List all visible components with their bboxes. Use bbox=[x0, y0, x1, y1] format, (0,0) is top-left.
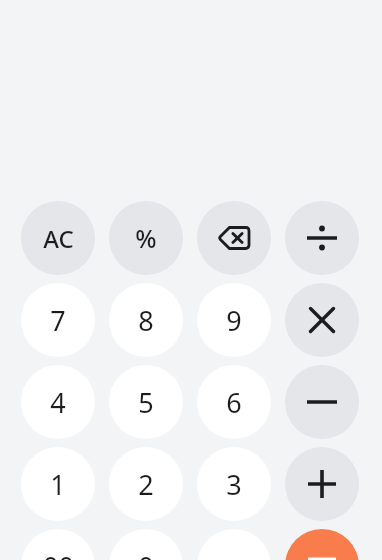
staticText: 4 bbox=[50, 384, 66, 421]
staticText: 1 bbox=[50, 466, 66, 503]
button[interactable]: 8 bbox=[109, 283, 183, 357]
button[interactable]: 00 bbox=[21, 529, 95, 560]
staticText: 9 bbox=[226, 302, 242, 339]
button[interactable]: Subtract bbox=[285, 365, 359, 439]
button[interactable]: AC bbox=[21, 201, 95, 275]
button[interactable]: Divide bbox=[285, 201, 359, 275]
staticText: 8 bbox=[138, 302, 154, 339]
button[interactable]: Multiply bbox=[285, 283, 359, 357]
staticText: 6 bbox=[226, 384, 242, 421]
button[interactable]: 1 bbox=[21, 447, 95, 521]
staticText: 0 bbox=[138, 548, 154, 560]
staticText: 3 bbox=[226, 466, 242, 503]
button[interactable]: 3 bbox=[197, 447, 271, 521]
button[interactable]: 7 bbox=[21, 283, 95, 357]
button[interactable]: 9 bbox=[197, 283, 271, 357]
button[interactable]: 0 bbox=[109, 529, 183, 560]
button[interactable]: 5 bbox=[109, 365, 183, 439]
button[interactable]: Equals bbox=[285, 529, 359, 560]
button[interactable]: 2 bbox=[109, 447, 183, 521]
staticText: 5 bbox=[138, 384, 154, 421]
staticText: 2 bbox=[138, 466, 154, 503]
staticText: 00 bbox=[43, 548, 74, 560]
button[interactable]: Add bbox=[285, 447, 359, 521]
button[interactable]: 6 bbox=[197, 365, 271, 439]
button[interactable]: % bbox=[109, 201, 183, 275]
staticText: AC bbox=[43, 222, 74, 255]
button[interactable]: Backspace bbox=[197, 201, 271, 275]
staticText: 7 bbox=[50, 302, 66, 339]
staticText: % bbox=[135, 221, 157, 255]
button[interactable]: 4 bbox=[21, 365, 95, 439]
button[interactable]: . bbox=[197, 529, 271, 560]
